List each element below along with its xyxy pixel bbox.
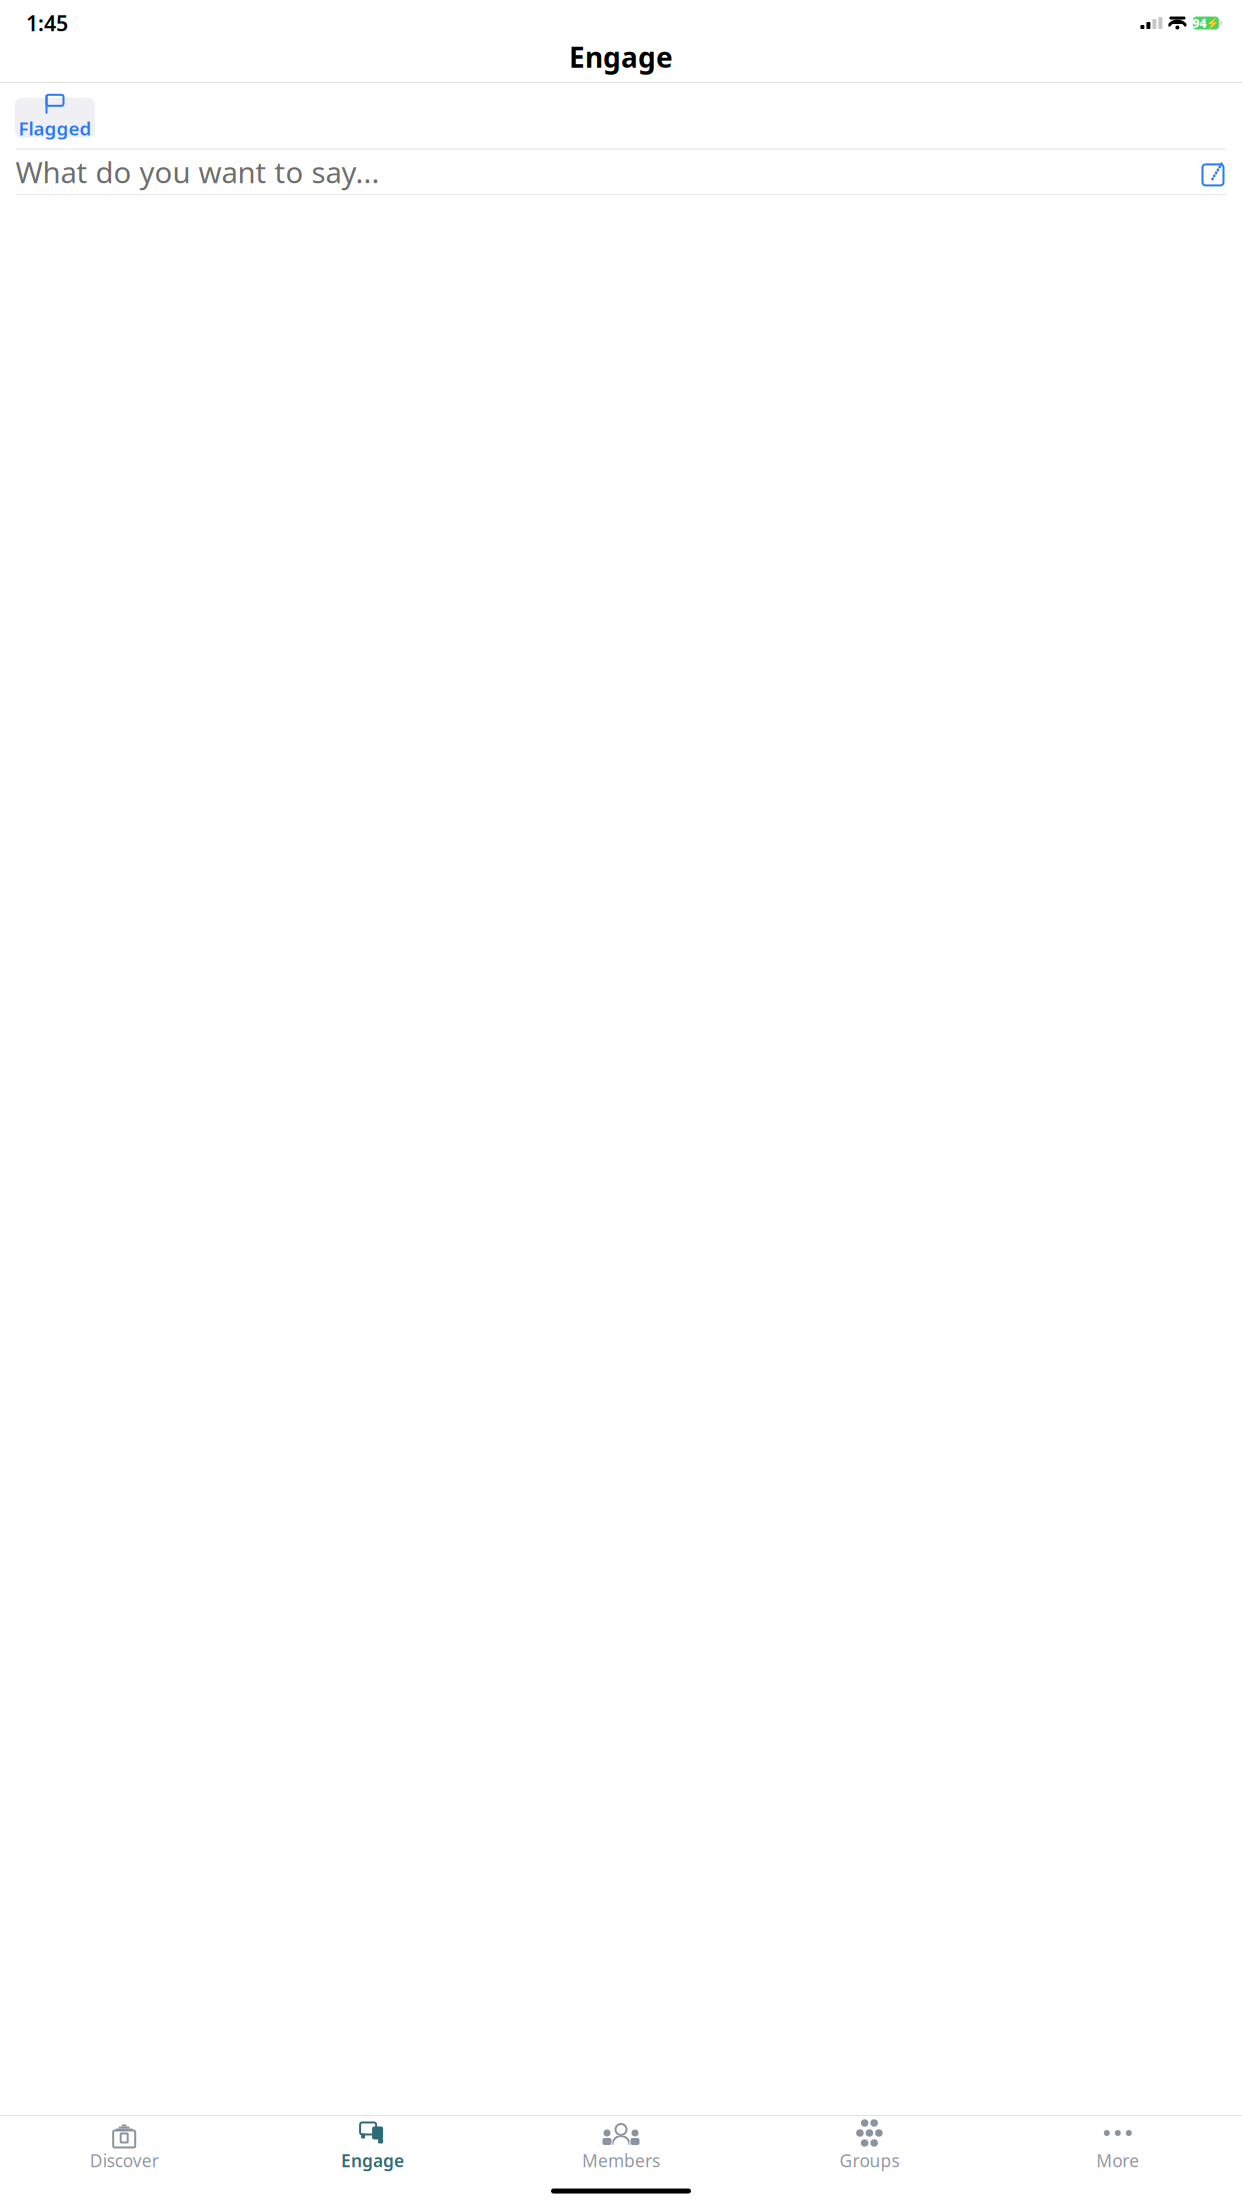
button[interactable]: Discover	[0, 2112, 248, 2178]
staticText: Engage	[569, 38, 673, 76]
staticText: More	[1096, 2149, 1139, 2172]
staticText: Members	[582, 2149, 660, 2172]
staticText: Groups	[839, 2149, 899, 2172]
button[interactable]: More	[994, 2112, 1242, 2178]
button[interactable]: Engage	[248, 2112, 497, 2178]
staticText: ⚡	[1206, 17, 1219, 29]
button[interactable]: Flagged	[15, 98, 95, 138]
button[interactable]: Groups	[745, 2112, 994, 2178]
staticText: 1:45	[26, 9, 68, 37]
button[interactable]: Members	[497, 2112, 745, 2178]
staticText: 94	[1192, 15, 1206, 31]
staticText: Engage	[341, 2149, 404, 2172]
staticText: What do you want to say...	[15, 152, 379, 191]
button[interactable]: What do you want to say...	[0, 149, 1242, 194]
staticText: Discover	[90, 2149, 159, 2172]
staticText: Flagged	[18, 116, 91, 141]
